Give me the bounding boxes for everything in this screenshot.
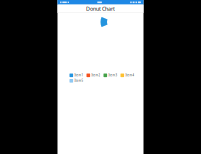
staticText: Item 5 [75, 79, 84, 82]
button[interactable]: Item 1 [69, 73, 84, 77]
staticText: Item 2 [92, 73, 101, 77]
staticText: Item 1 [75, 73, 84, 77]
staticText: Item 3 [109, 73, 118, 77]
button[interactable]: Item 5 [69, 79, 84, 83]
button[interactable]: Item 2 [86, 73, 101, 77]
staticText: Donut Chart [86, 5, 115, 12]
button[interactable]: Item 3 [103, 73, 118, 77]
staticText: Item 4 [126, 73, 135, 77]
button[interactable]: Item 4 [120, 73, 135, 77]
